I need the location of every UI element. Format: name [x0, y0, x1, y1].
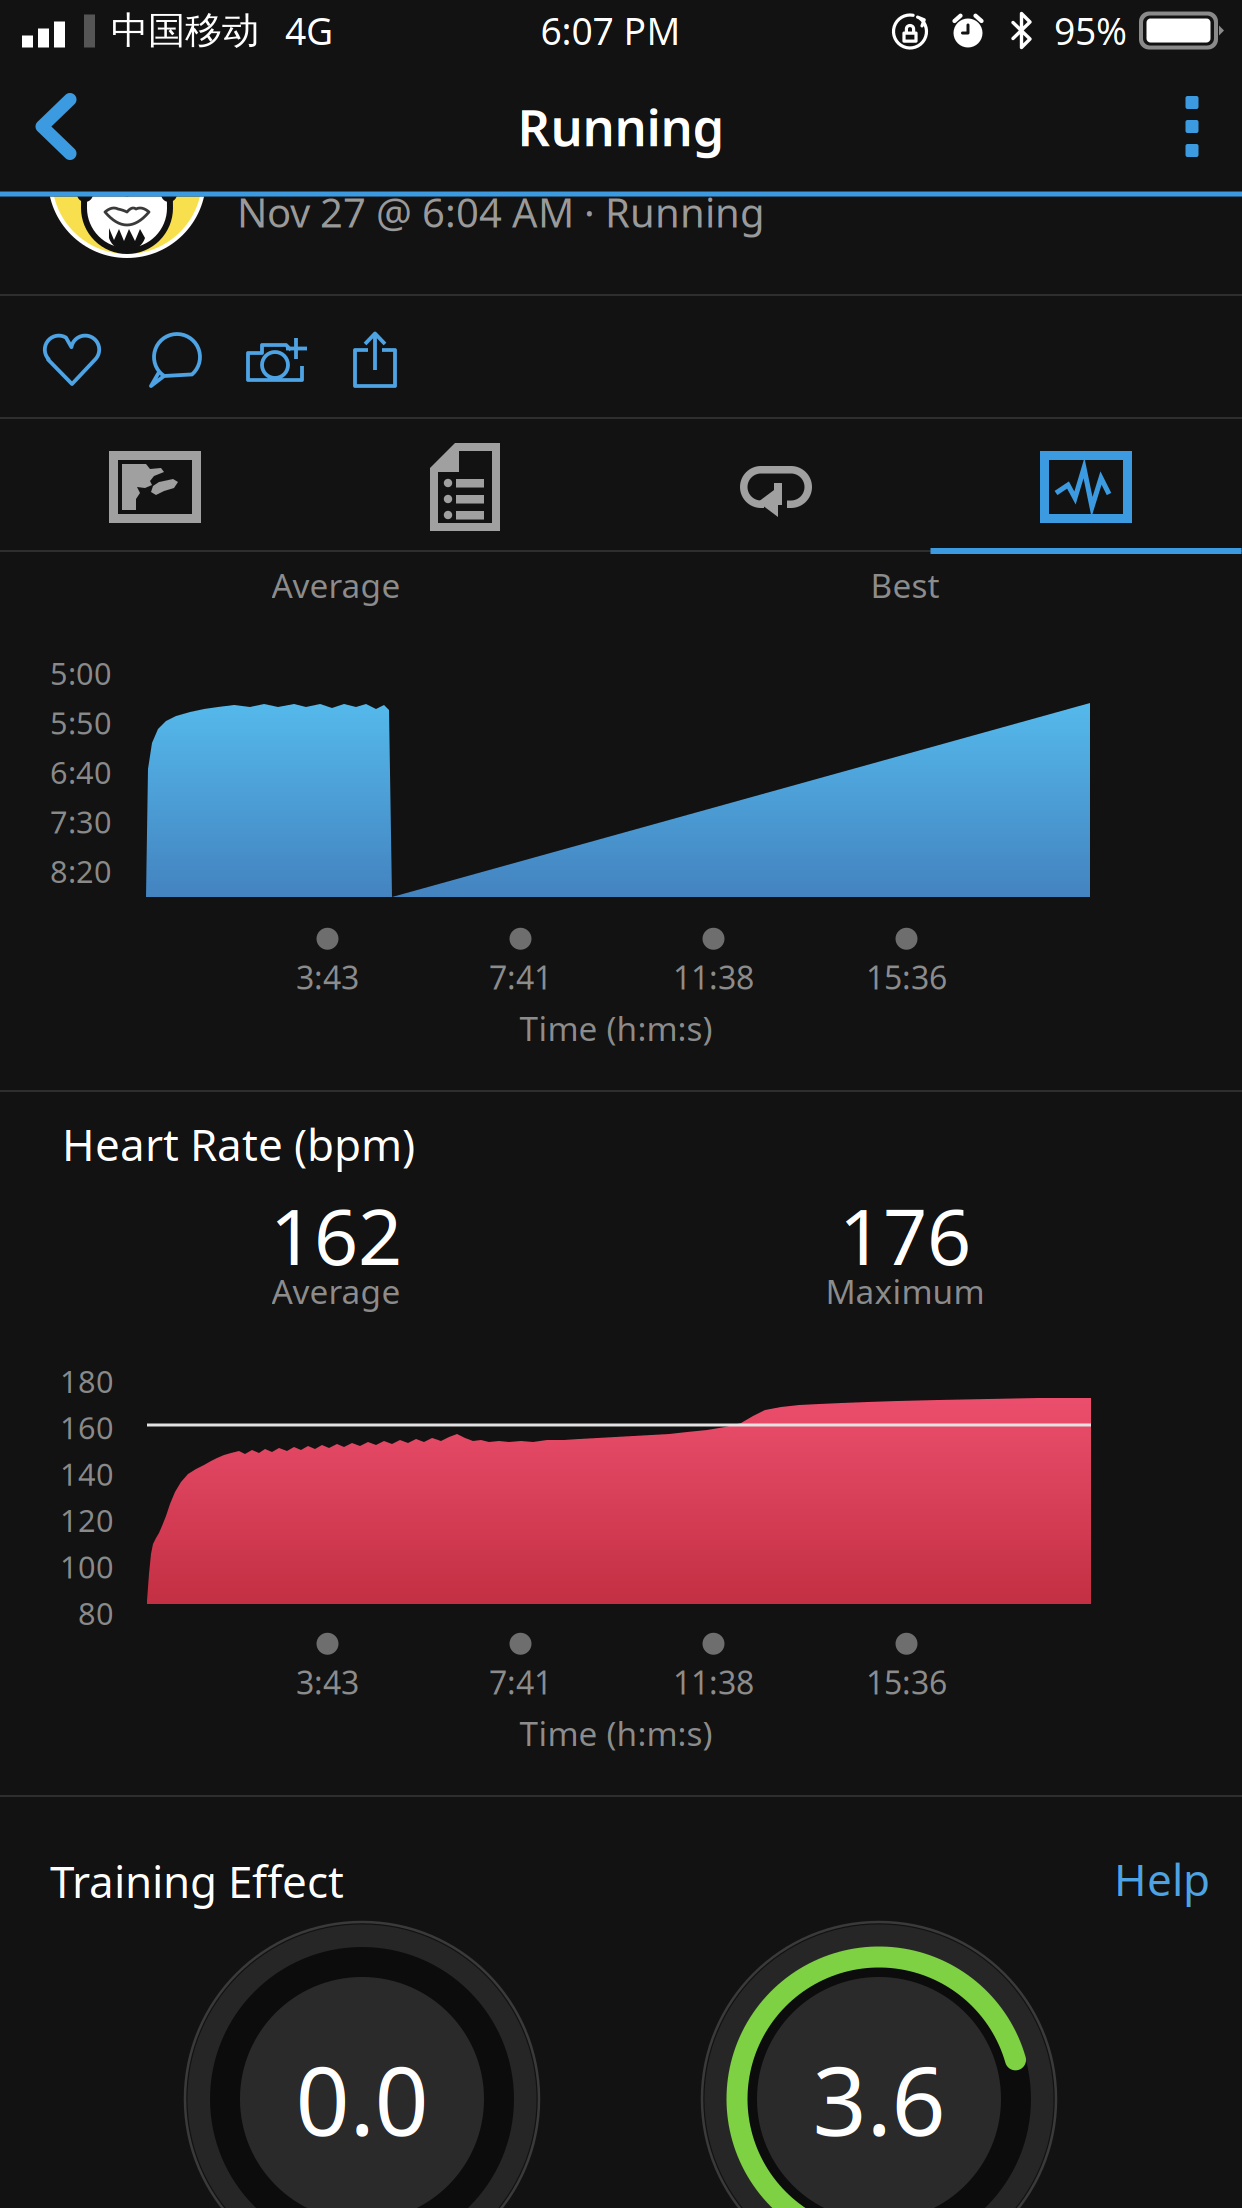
staticText: Running: [517, 93, 724, 160]
button[interactable]: Share: [324, 307, 426, 411]
staticText: 6:07 PM: [540, 6, 680, 55]
staticText: Help: [1114, 1850, 1210, 1908]
staticText: 11:38: [673, 1661, 754, 1703]
staticText: Time (h:m:s): [519, 1006, 712, 1050]
staticText: 95%: [1054, 6, 1127, 55]
button[interactable]: Help: [1114, 1850, 1210, 1908]
staticText: 0.0: [295, 2036, 428, 2162]
staticText: 11:38: [673, 956, 754, 998]
staticText: Training Effect: [50, 1852, 344, 1910]
staticText: 120: [60, 1500, 114, 1540]
button[interactable]: Details: [365, 423, 565, 551]
staticText: 6:40: [50, 752, 112, 792]
staticText: 3:43: [296, 1661, 359, 1703]
staticText: Best: [870, 563, 939, 607]
staticText: 中国移动: [111, 8, 259, 53]
staticText: 5:50: [50, 702, 112, 743]
staticText: Nov 27 @ 6:04 AM · Running: [237, 185, 765, 238]
staticText: 162: [270, 1184, 402, 1286]
staticText: Maximum: [825, 1269, 984, 1313]
button[interactable]: Add photo: [226, 311, 328, 415]
staticText: 7:30: [50, 801, 112, 842]
staticText: Heart Rate (bpm): [62, 1115, 415, 1173]
staticText: 180: [60, 1361, 114, 1401]
staticText: 5:00: [50, 653, 112, 693]
staticText: Time (h:m:s): [519, 1711, 712, 1755]
button[interactable]: Laps: [676, 423, 876, 551]
button[interactable]: Map: [55, 423, 255, 551]
button[interactable]: Comment: [126, 309, 228, 413]
staticText: 8:20: [50, 851, 112, 891]
button[interactable]: Charts: [986, 423, 1186, 551]
staticText: 4G: [285, 6, 333, 55]
staticText: 15:36: [866, 1661, 947, 1703]
staticText: Average: [271, 1269, 400, 1313]
staticText: 3.6: [812, 2036, 945, 2162]
staticText: Average: [271, 563, 400, 607]
staticText: 100: [60, 1546, 114, 1587]
staticText: 7:41: [489, 1661, 552, 1703]
button[interactable]: Back: [0, 61, 106, 191]
staticText: 140: [60, 1453, 114, 1494]
staticText: 15:36: [866, 956, 947, 998]
staticText: 80: [78, 1593, 114, 1633]
staticText: 176: [839, 1184, 971, 1286]
button[interactable]: More options: [1142, 61, 1242, 191]
staticText: 7:41: [489, 956, 552, 998]
button[interactable]: Like: [21, 310, 123, 414]
staticText: 3:43: [296, 956, 359, 998]
staticText: 160: [60, 1407, 114, 1448]
